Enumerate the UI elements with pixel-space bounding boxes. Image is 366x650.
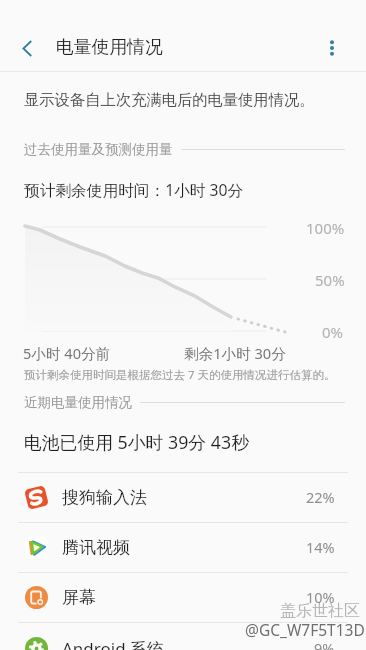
- staticText: 剩余1小时 30分: [184, 343, 286, 363]
- button[interactable]: More options: [314, 30, 350, 66]
- staticText: 22%: [306, 487, 335, 507]
- staticText: 14%: [306, 537, 335, 557]
- staticText: 近期电量使用情况: [24, 394, 132, 411]
- staticText: @GC_W7F5T13D: [245, 619, 365, 640]
- button[interactable]: 屏幕: [0, 572, 366, 622]
- staticText: 5小时 40分前: [23, 343, 111, 363]
- staticText: 腾讯视频: [62, 537, 130, 558]
- button[interactable]: Back: [9, 30, 45, 66]
- staticText: 预计剩余使用时间是根据您过去 7 天的使用情况进行估算的。: [24, 367, 336, 383]
- staticText: 9%: [314, 638, 335, 650]
- staticText: 搜狗输入法: [62, 487, 147, 508]
- staticText: 50%: [315, 270, 345, 290]
- staticText: 100%: [306, 218, 345, 238]
- staticText: 电池已使用 5小时 39分 43秒: [24, 430, 249, 454]
- staticText: 盖乐世社区: [280, 601, 360, 621]
- button[interactable]: Android 系统: [0, 623, 366, 650]
- staticText: 过去使用量及预测使用量: [24, 141, 173, 158]
- staticText: 0%: [322, 322, 344, 342]
- staticText: 屏幕: [62, 587, 96, 608]
- button[interactable]: 搜狗输入法: [0, 472, 366, 522]
- staticText: 10%: [306, 587, 335, 607]
- staticText: 预计剩余使用时间：1小时 30分: [24, 179, 244, 200]
- button[interactable]: 腾讯视频: [0, 522, 366, 572]
- staticText: Android 系统: [62, 637, 165, 650]
- staticText: 显示设备自上次充满电后的电量使用情况。: [24, 90, 315, 109]
- staticText: 电量使用情况: [56, 36, 163, 58]
